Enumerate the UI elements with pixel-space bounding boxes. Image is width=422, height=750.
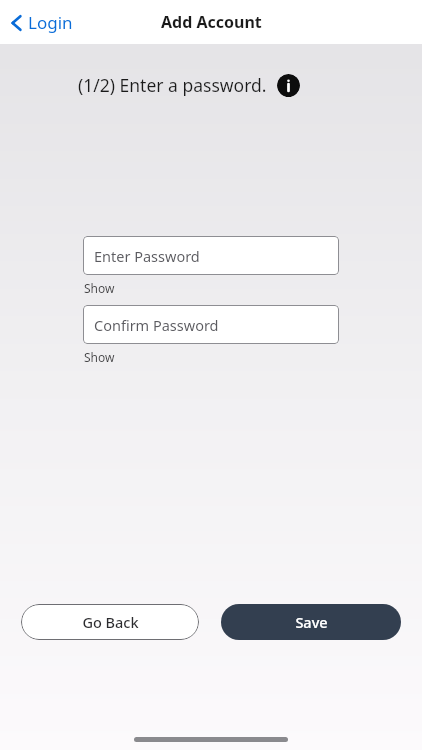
staticText: Enter Password xyxy=(94,246,200,266)
staticText: (1/2) Enter a password. xyxy=(78,73,267,97)
button[interactable]: Go Back xyxy=(21,604,199,640)
staticText: Login xyxy=(28,11,73,34)
button[interactable]: Confirm Password xyxy=(83,305,339,344)
staticText: Show xyxy=(84,280,115,296)
button[interactable]: Show xyxy=(83,279,116,297)
staticText: Show xyxy=(84,349,115,365)
button[interactable]: Information about password requirements xyxy=(277,74,300,97)
button[interactable]: Enter Password xyxy=(83,236,339,275)
staticText: Confirm Password xyxy=(94,315,219,335)
button[interactable]: Show xyxy=(83,348,116,366)
button[interactable]: Login xyxy=(8,7,75,38)
staticText: Go Back xyxy=(82,612,139,632)
staticText: Save xyxy=(295,612,328,632)
staticText: Add Account xyxy=(161,11,262,33)
button[interactable]: Save xyxy=(221,604,401,640)
